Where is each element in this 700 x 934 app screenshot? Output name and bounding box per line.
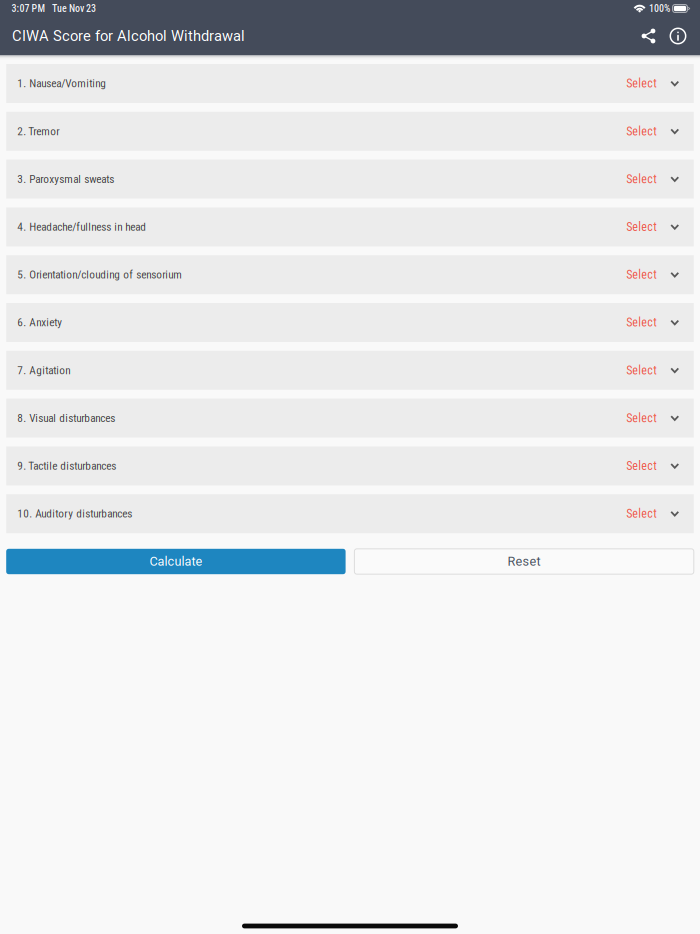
button[interactable]: 5. Orientation/clouding of sensorium	[6, 255, 694, 294]
staticText: 8. Visual disturbances	[17, 411, 115, 425]
staticText: Select	[626, 507, 657, 521]
staticText: Select	[626, 363, 657, 377]
staticText: Select	[626, 268, 657, 282]
button[interactable]: Information	[663, 23, 693, 49]
button[interactable]: Reset	[354, 549, 694, 574]
staticText: Calculate	[149, 554, 202, 569]
staticText: 9. Tactile disturbances	[17, 459, 116, 473]
staticText: 4. Headache/fullness in head	[17, 220, 146, 234]
staticText: Select	[626, 172, 657, 186]
staticText: 3:07 PM	[12, 3, 46, 14]
staticText: Select	[626, 220, 657, 234]
button[interactable]: Share	[634, 23, 663, 49]
button[interactable]: 4. Headache/fullness in head	[6, 207, 694, 246]
staticText: Reset	[508, 554, 541, 569]
staticText: Select	[626, 76, 657, 91]
button[interactable]: Calculate	[6, 549, 346, 574]
staticText: Select	[626, 315, 657, 330]
button[interactable]: 6. Anxiety	[6, 303, 694, 342]
staticText: 2. Tremor	[17, 125, 59, 138]
button[interactable]: 7. Agitation	[6, 351, 694, 390]
staticText: 6. Anxiety	[17, 316, 62, 329]
staticText: 100%	[649, 3, 670, 14]
staticText: Select	[626, 459, 657, 473]
button[interactable]: 8. Visual disturbances	[6, 399, 694, 438]
button[interactable]: 10. Auditory disturbances	[6, 494, 694, 533]
staticText: Select	[626, 411, 657, 425]
staticText: Select	[626, 124, 657, 138]
staticText: 10. Auditory disturbances	[17, 507, 132, 520]
button[interactable]: 3. Paroxysmal sweats	[6, 160, 694, 199]
staticText: 3. Paroxysmal sweats	[17, 172, 114, 186]
button[interactable]: 2. Tremor	[6, 112, 694, 151]
button[interactable]: 1. Nausea/Vomiting	[6, 64, 694, 103]
staticText: 1. Nausea/Vomiting	[17, 77, 106, 90]
staticText: CIWA Score for Alcohol Withdrawal	[12, 27, 245, 45]
staticText: 7. Agitation	[17, 364, 70, 377]
staticText: Tue Nov 23	[52, 3, 96, 14]
button[interactable]: 9. Tactile disturbances	[6, 446, 694, 485]
staticText: 5. Orientation/clouding of sensorium	[17, 268, 182, 281]
